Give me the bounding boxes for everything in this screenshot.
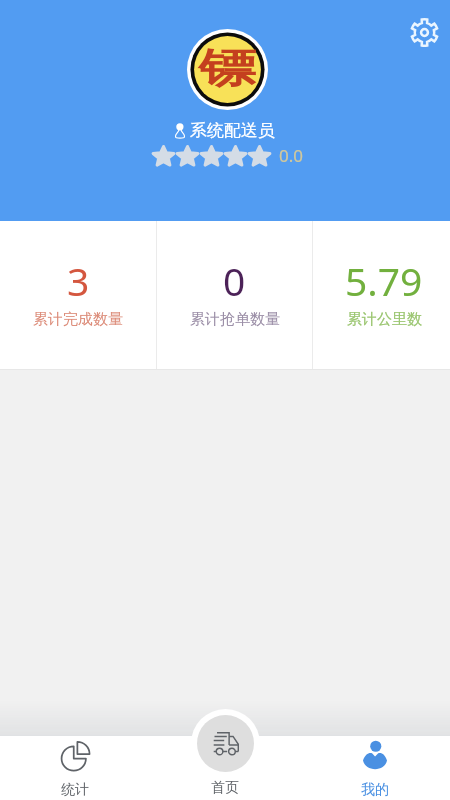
button[interactable]: 我的	[300, 735, 450, 800]
button[interactable]: Settings	[404, 12, 445, 53]
staticText: 镖	[199, 43, 256, 94]
staticText: 累计抢单数量	[190, 310, 280, 329]
staticText: 0	[223, 254, 246, 307]
button[interactable]: 5.79	[316, 221, 450, 370]
staticText: 统计	[61, 781, 89, 799]
button[interactable]: 0	[156, 221, 313, 370]
staticText: 累计公里数	[347, 310, 422, 329]
staticText: 0.0	[279, 144, 304, 167]
button[interactable]: 3	[0, 221, 156, 370]
staticText: 累计完成数量	[33, 310, 123, 329]
button[interactable]: 统计	[0, 735, 150, 800]
staticText: 我的	[361, 781, 389, 799]
staticText: 首页	[211, 779, 239, 797]
staticText: 3	[67, 254, 90, 307]
button[interactable]: 首页	[191, 709, 260, 778]
staticText: 系统配送员	[190, 120, 275, 141]
staticText: 5.79	[345, 254, 423, 307]
